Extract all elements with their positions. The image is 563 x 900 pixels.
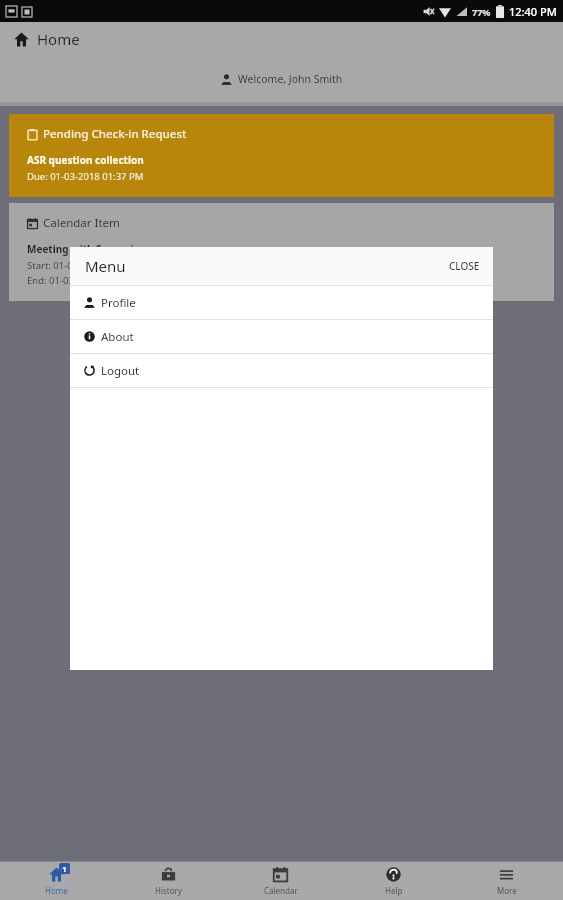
staticText: Calendar	[264, 885, 298, 896]
staticText: Profile	[101, 295, 136, 311]
button[interactable]: 1	[0, 862, 112, 900]
staticText: End: 01-03-2018 03:00 PM	[27, 274, 143, 287]
staticText: More	[497, 885, 517, 896]
staticText: 1	[62, 864, 67, 874]
staticText: Start: 01-03-2018 02:00 PM	[27, 259, 147, 272]
button[interactable]: Pending Check-in Request	[9, 114, 554, 197]
button[interactable]: About	[70, 320, 493, 353]
staticText: ASR question collection	[27, 153, 144, 167]
staticText: Due: 01-03-2018 01:37 PM	[27, 170, 144, 183]
staticText: 12:40 PM	[509, 4, 557, 19]
staticText: CLOSE	[449, 259, 480, 273]
staticText: History	[155, 885, 182, 896]
button[interactable]: Calendar Item	[9, 203, 554, 301]
button[interactable]: More	[450, 862, 563, 900]
other: Home	[14, 32, 29, 47]
staticText: Help	[385, 885, 403, 896]
button[interactable]: Profile	[70, 286, 493, 319]
staticText: Welcome, John Smith	[238, 72, 343, 86]
staticText: Home	[37, 29, 80, 49]
staticText: Home	[45, 885, 68, 896]
staticText: Menu	[85, 256, 126, 276]
staticText: About	[101, 329, 134, 345]
staticText: 77%	[472, 6, 491, 18]
button[interactable]: CLOSE	[436, 251, 493, 281]
button[interactable]: Logout	[70, 354, 493, 387]
button[interactable]: History	[112, 862, 224, 900]
staticText: Meeting with Supervisor	[27, 242, 150, 256]
staticText: Pending Check-in Request	[43, 126, 187, 142]
staticText: Calendar Item	[43, 215, 120, 231]
staticText: Logout	[101, 363, 140, 379]
button[interactable]: Help	[337, 862, 450, 900]
button[interactable]: Calendar	[224, 862, 337, 900]
